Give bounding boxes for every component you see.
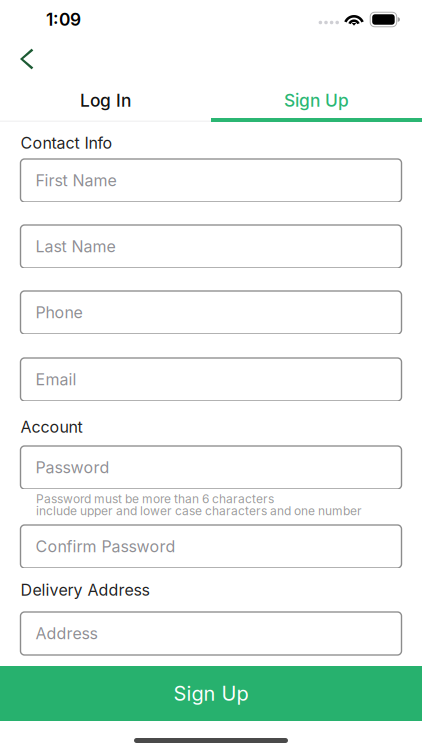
staticText: Last Name <box>35 237 115 256</box>
button[interactable]: Email <box>20 358 401 401</box>
staticText: Log In <box>80 90 131 111</box>
staticText: Account <box>20 417 82 437</box>
staticText: Sign Up <box>173 681 248 706</box>
staticText: include upper and lower case characters … <box>36 504 362 518</box>
button[interactable]: Sign Up <box>211 83 422 118</box>
staticText: First Name <box>35 171 116 190</box>
button[interactable]: Confirm Password <box>20 525 401 568</box>
staticText: Sign Up <box>284 90 349 111</box>
staticText: Phone <box>35 303 82 322</box>
button[interactable]: Back <box>0 40 57 82</box>
staticText: Password must be more than 6 characters <box>36 492 274 506</box>
staticText: 1:09 <box>46 9 81 30</box>
staticText: Delivery Address <box>20 580 149 600</box>
button[interactable]: Sign Up <box>0 666 422 721</box>
staticText: Email <box>35 370 76 389</box>
staticText: Confirm Password <box>35 537 175 556</box>
staticText: Password <box>35 458 109 477</box>
button[interactable]: Address <box>20 612 401 655</box>
button[interactable]: Log In <box>0 83 211 118</box>
button[interactable]: First Name <box>20 159 401 202</box>
button[interactable]: Last Name <box>20 225 401 268</box>
staticText: Address <box>35 624 97 643</box>
button[interactable]: Password <box>20 446 401 489</box>
staticText: Contact Info <box>20 133 112 153</box>
button[interactable]: Phone <box>20 291 401 334</box>
